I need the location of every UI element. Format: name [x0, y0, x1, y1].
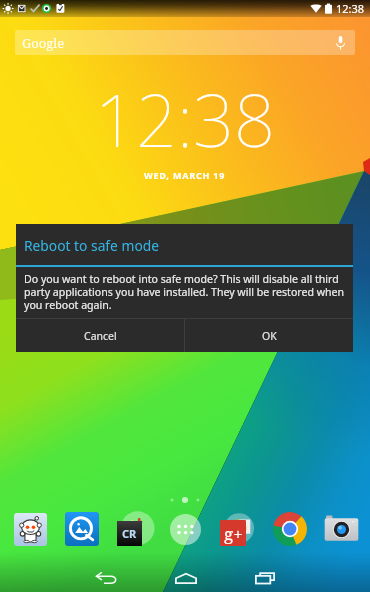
staticText: 12:38: [336, 1, 365, 16]
button[interactable]: Recent apps: [225, 564, 304, 592]
staticText: Reboot to safe mode: [24, 236, 160, 255]
button[interactable]: All apps: [163, 507, 207, 551]
staticText: Cancel: [84, 329, 117, 343]
button[interactable]: Photos: [60, 507, 104, 551]
button[interactable]: Google Plus: [215, 507, 259, 551]
button[interactable]: Google: [15, 30, 355, 55]
button[interactable]: Home: [146, 564, 225, 592]
button[interactable]: Reddit: [8, 507, 52, 551]
staticText: CR: [122, 526, 137, 541]
staticText: OK: [262, 329, 277, 343]
staticText: g+: [224, 522, 243, 545]
button[interactable]: Chrome: [268, 507, 312, 551]
button[interactable]: Back: [67, 564, 146, 592]
staticText: WED, MARCH 19: [144, 169, 226, 181]
button[interactable]: Cancel: [16, 319, 184, 352]
other: Voice search: [336, 36, 345, 50]
button[interactable]: File manager: [112, 507, 156, 551]
button[interactable]: OK: [185, 319, 353, 352]
staticText: 12:38: [95, 70, 276, 168]
button[interactable]: Camera: [319, 507, 363, 551]
staticText: Google: [22, 34, 65, 52]
staticText: Do you want to reboot into safe mode? Th…: [24, 272, 345, 312]
